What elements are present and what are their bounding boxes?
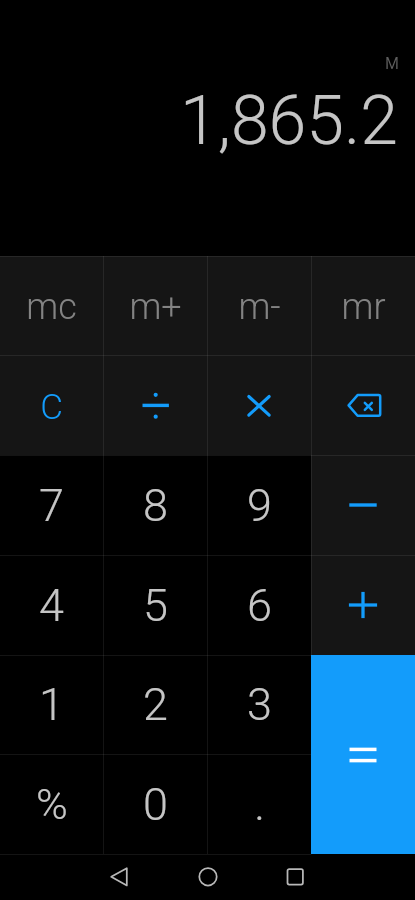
staticText: mc <box>26 286 77 328</box>
button[interactable]: Minus <box>311 455 415 555</box>
staticText: 6 <box>247 579 272 632</box>
button[interactable]: 0 <box>103 754 207 854</box>
button[interactable]: 6 <box>207 555 311 655</box>
staticText: 5 <box>143 579 168 632</box>
staticText: 9 <box>247 479 272 532</box>
button[interactable]: C <box>0 355 103 455</box>
button[interactable]: mc <box>0 256 103 355</box>
button[interactable]: 1 <box>0 655 103 754</box>
button[interactable]: 4 <box>0 555 103 655</box>
staticText: 1,865.2 <box>180 81 398 161</box>
button[interactable]: Divide <box>103 355 207 455</box>
button[interactable]: Home <box>184 854 232 900</box>
staticText: 4 <box>39 579 64 632</box>
staticText: 3 <box>247 678 272 731</box>
staticText: C <box>40 387 63 428</box>
button[interactable]: 9 <box>207 455 311 555</box>
button[interactable]: . <box>207 754 311 854</box>
button[interactable]: 2 <box>103 655 207 754</box>
staticText: 2 <box>143 678 168 731</box>
staticText: M <box>385 54 399 73</box>
staticText: . <box>254 778 265 831</box>
button[interactable]: Backspace <box>311 355 415 455</box>
button[interactable]: 5 <box>103 555 207 655</box>
button[interactable]: Plus <box>311 555 415 655</box>
staticText: mr <box>341 286 386 328</box>
staticText: 0 <box>143 778 168 831</box>
button[interactable]: 7 <box>0 455 103 555</box>
staticText: 7 <box>39 479 64 532</box>
staticText: 1 <box>39 678 64 731</box>
button[interactable]: m+ <box>103 256 207 355</box>
button[interactable]: mr <box>311 256 415 355</box>
staticText: m+ <box>129 286 182 328</box>
button[interactable]: Back <box>95 854 143 900</box>
button[interactable]: Equals <box>311 655 415 854</box>
button[interactable]: Recent apps <box>271 854 319 900</box>
staticText: % <box>36 779 68 829</box>
button[interactable]: 3 <box>207 655 311 754</box>
staticText: m- <box>238 286 281 328</box>
button[interactable]: m- <box>207 256 311 355</box>
button[interactable]: 8 <box>103 455 207 555</box>
button[interactable]: Multiply <box>207 355 311 455</box>
staticText: 8 <box>143 479 168 532</box>
button[interactable]: % <box>0 754 103 854</box>
